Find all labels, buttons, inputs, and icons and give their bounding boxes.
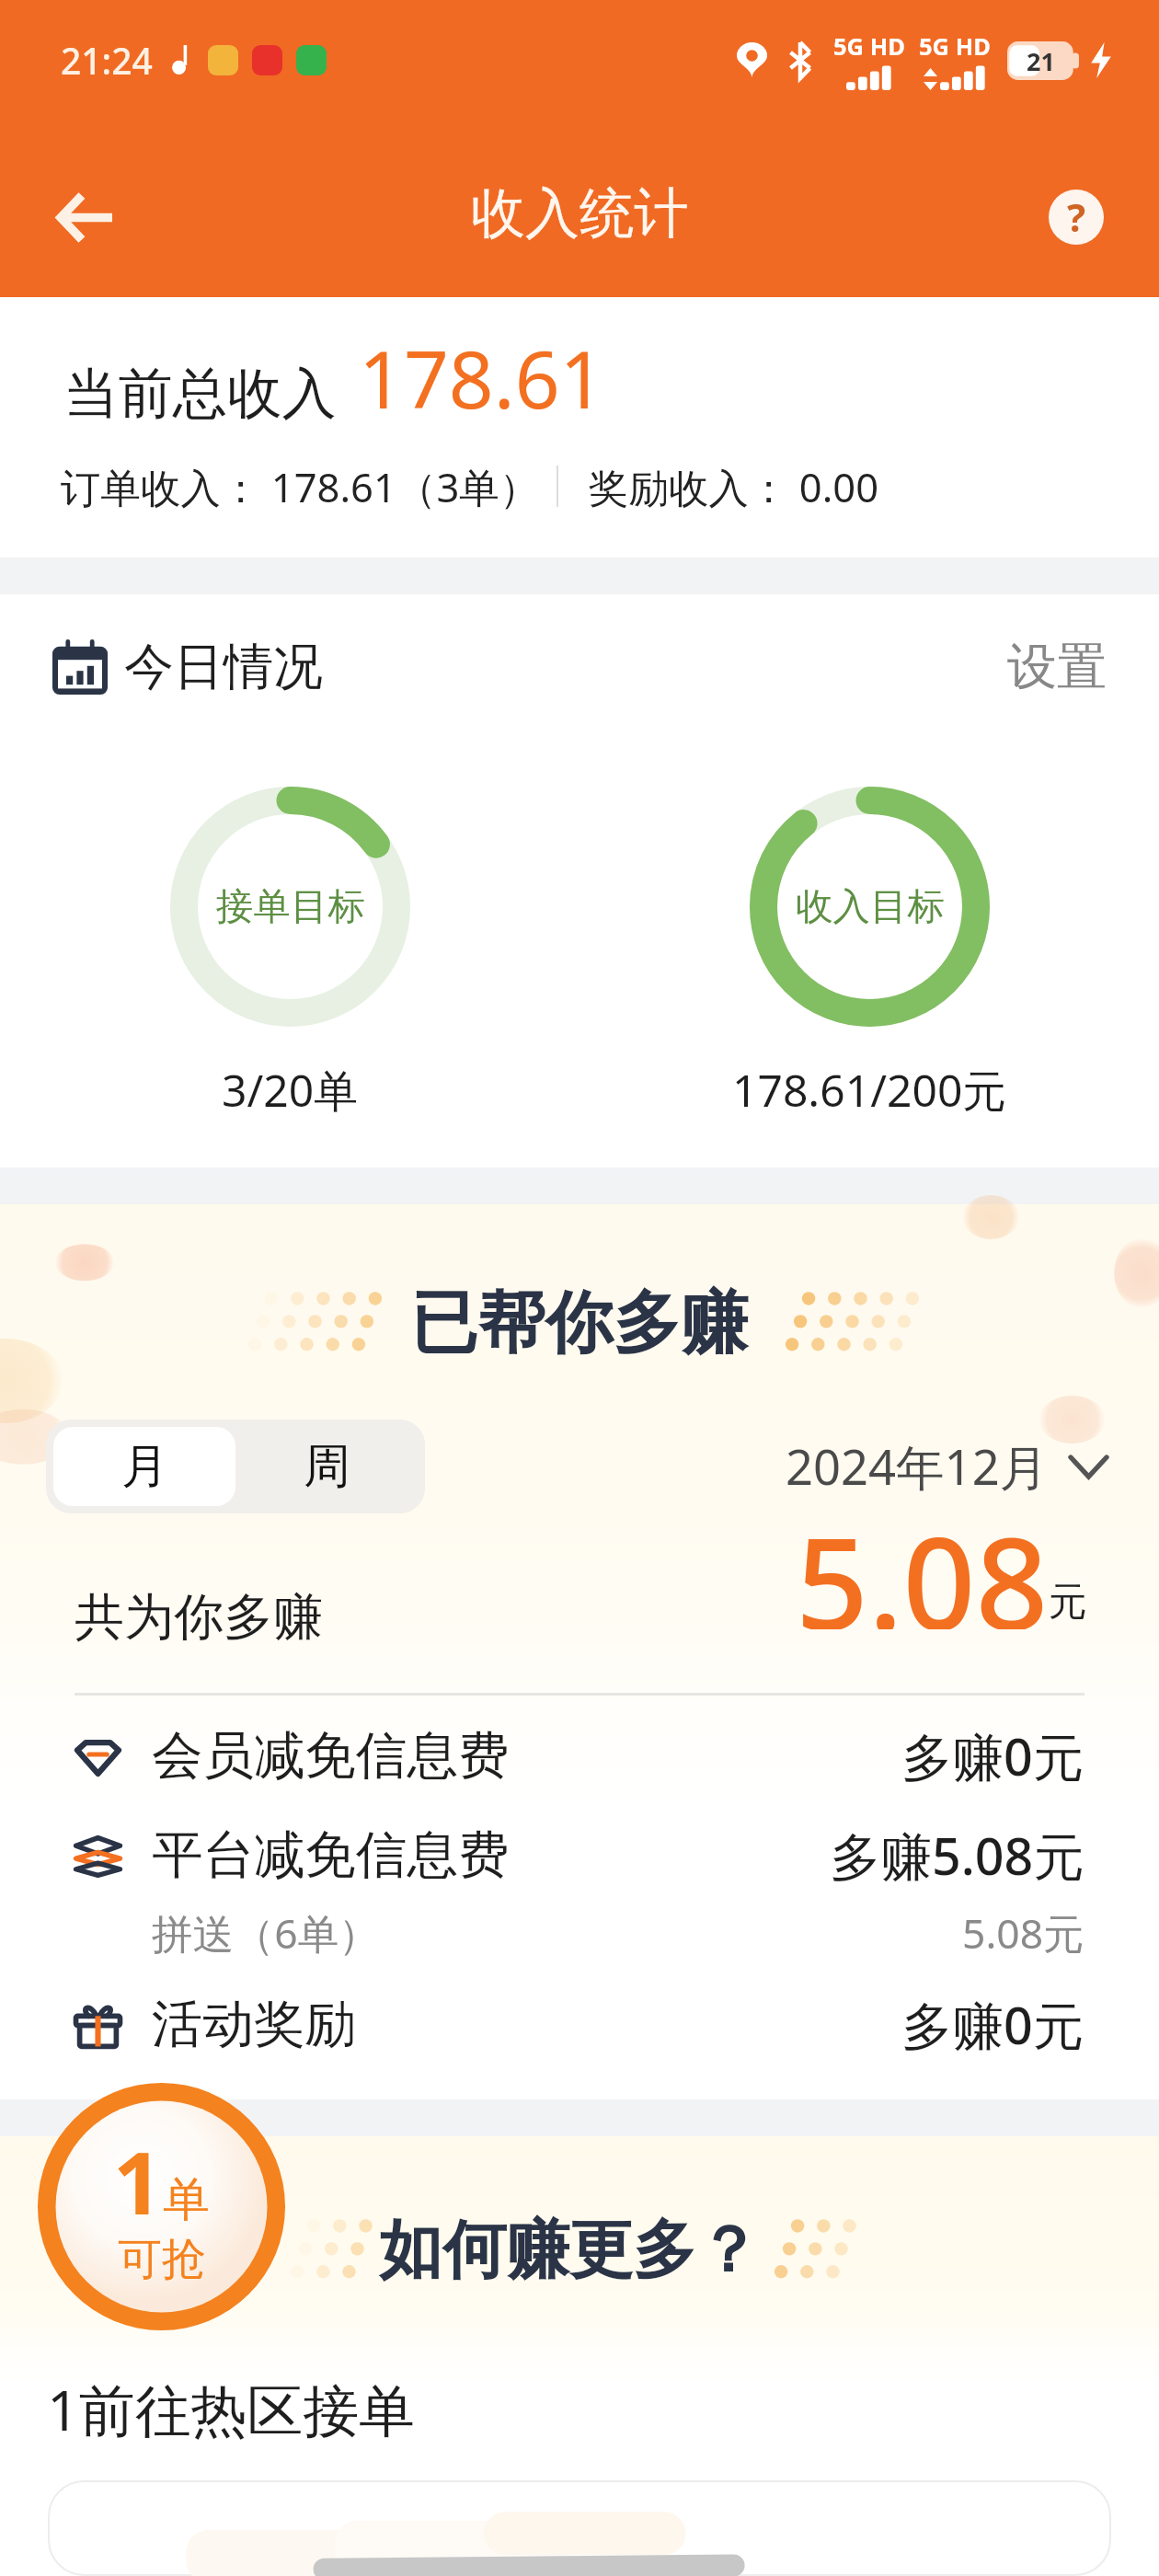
- button[interactable]: Back: [19, 151, 152, 283]
- staticText: 178.61/200元: [732, 1060, 1007, 1121]
- button[interactable]: 月: [53, 1427, 235, 1506]
- staticText: 如何赚更多？: [379, 2211, 760, 2291]
- staticText: 2024年12月: [786, 1433, 1049, 1500]
- staticText: ?: [1067, 190, 1086, 243]
- staticText: 元: [1049, 1578, 1087, 1627]
- staticText: 1前往热区接单: [47, 2371, 416, 2447]
- staticText: 共为你多赚: [75, 1586, 323, 1649]
- button[interactable]: 1单可抢: [38, 2083, 285, 2330]
- staticText: 已帮你多赚: [410, 1281, 749, 1366]
- staticText: 订单收入： 178.61（3单）: [61, 459, 540, 513]
- staticText: 收入统计: [471, 179, 689, 247]
- button[interactable]: 2024年12月: [786, 1433, 1107, 1500]
- button[interactable]: 平台减免信息费: [0, 1806, 1159, 1905]
- staticText: 单: [163, 2170, 210, 2229]
- button[interactable]: 42单: [48, 2480, 1111, 2576]
- staticText: 多赚0元: [901, 1990, 1084, 2060]
- staticText: 平台减免信息费: [152, 1823, 510, 1888]
- staticText: 接单目标: [216, 883, 365, 930]
- staticText: 1: [113, 2123, 163, 2240]
- staticText: 会员减免信息费: [152, 1724, 510, 1788]
- staticText: 奖励收入： 0.00: [589, 459, 879, 513]
- staticText: 活动奖励: [152, 1993, 356, 2057]
- staticText: 月: [121, 1437, 168, 1496]
- staticText: 可抢: [118, 2232, 206, 2287]
- staticText: 多赚0元: [901, 1721, 1084, 1791]
- staticText: 178.61: [359, 325, 605, 431]
- staticText: 周: [304, 1437, 350, 1496]
- button[interactable]: 设置: [1007, 636, 1107, 698]
- staticText: 5.08元: [962, 1905, 1084, 1961]
- staticText: 21: [1027, 44, 1055, 78]
- button[interactable]: 会员减免信息费: [0, 1707, 1159, 1806]
- button[interactable]: Help: [1010, 151, 1142, 283]
- staticText: 5G HD: [833, 30, 905, 63]
- staticText: 21:24: [61, 36, 153, 85]
- staticText: 多赚5.08元: [830, 1821, 1084, 1891]
- staticText: 5G HD: [919, 30, 991, 63]
- button[interactable]: 周: [235, 1427, 418, 1506]
- button[interactable]: 活动奖励: [0, 1975, 1159, 2075]
- staticText: 设置: [1007, 636, 1107, 698]
- staticText: 拼送（6单）: [152, 1905, 380, 1961]
- staticText: 当前总收入: [63, 360, 337, 429]
- staticText: 今日情况: [124, 636, 323, 698]
- staticText: 3/20单: [222, 1060, 359, 1121]
- staticText: 收入目标: [796, 883, 945, 930]
- staticText: 5.08: [796, 1494, 1049, 1629]
